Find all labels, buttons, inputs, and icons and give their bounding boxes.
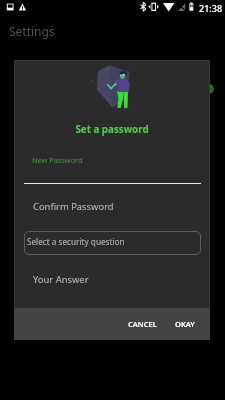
staticText: 21:38: [199, 2, 223, 14]
staticText: Set a password: [14, 123, 210, 136]
staticText: Settings: [9, 23, 55, 39]
button[interactable]: OKAY: [170, 313, 200, 335]
staticText: Select a security question: [27, 236, 125, 247]
staticText: CANCEL: [128, 319, 157, 329]
staticText: New Password: [32, 155, 83, 165]
button[interactable]: Add: [200, 84, 214, 94]
button[interactable]: Select a security question: [24, 231, 201, 255]
staticText: OKAY: [175, 319, 195, 329]
button[interactable]: CANCEL: [123, 313, 162, 335]
staticText: Your Answer: [33, 273, 89, 286]
staticText: Confirm Password: [33, 200, 114, 213]
